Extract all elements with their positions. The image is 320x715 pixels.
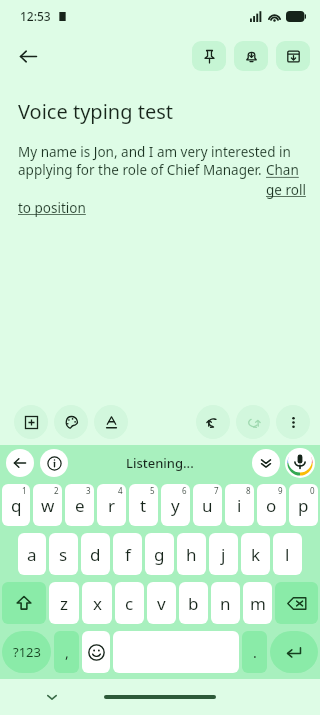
button[interactable]: r xyxy=(97,484,126,526)
staticText: w xyxy=(41,494,55,517)
button[interactable]: w xyxy=(33,484,62,526)
button[interactable]: Backspace xyxy=(275,582,318,624)
button[interactable]: Voice input xyxy=(285,448,315,478)
button[interactable]: Redo xyxy=(236,405,270,439)
staticText: Listening... xyxy=(126,454,194,472)
staticText: m xyxy=(250,592,266,615)
staticText: s xyxy=(59,543,68,566)
button[interactable]: i xyxy=(225,484,254,526)
button[interactable]: Collapse keyboard xyxy=(252,449,280,477)
staticText: , xyxy=(65,643,69,662)
staticText: l xyxy=(285,543,290,566)
staticText: n xyxy=(220,592,231,615)
staticText: o xyxy=(266,494,277,517)
button[interactable]: t xyxy=(129,484,158,526)
staticText: applying for the role of Chief Manager. xyxy=(18,161,266,179)
staticText: q xyxy=(11,494,22,517)
button[interactable]: u xyxy=(193,484,222,526)
button[interactable]: Undo xyxy=(196,405,230,439)
button[interactable]: Back xyxy=(8,36,48,76)
staticText: 5 xyxy=(150,485,155,496)
staticText: x xyxy=(93,592,102,615)
button[interactable]: ?123 xyxy=(2,631,51,673)
button[interactable]: , xyxy=(54,631,79,673)
button[interactable]: c xyxy=(115,582,144,624)
staticText: 8 xyxy=(246,485,251,496)
button[interactable]: Enter xyxy=(270,631,318,673)
button[interactable]: d xyxy=(81,533,110,575)
button[interactable]: h xyxy=(177,533,206,575)
staticText: 0 xyxy=(310,485,315,496)
staticText: d xyxy=(90,543,101,566)
staticText: 12:53 xyxy=(20,8,51,24)
staticText: My name is Jon, and I am very interested… xyxy=(18,143,291,161)
button[interactable]: n xyxy=(211,582,240,624)
staticText: c xyxy=(125,592,134,615)
button[interactable]: f xyxy=(113,533,142,575)
staticText: u xyxy=(202,494,213,517)
staticText: j xyxy=(221,543,226,566)
staticText: Change roll xyxy=(266,161,306,199)
staticText: i xyxy=(237,494,242,517)
staticText: r xyxy=(108,494,116,517)
staticText: y xyxy=(171,494,180,517)
staticText: 7 xyxy=(214,485,219,496)
staticText: f xyxy=(125,543,131,566)
staticText: v xyxy=(157,592,166,615)
button[interactable]: Shift xyxy=(2,582,46,624)
staticText: ?123 xyxy=(13,643,41,661)
staticText: k xyxy=(251,543,261,566)
button[interactable]: s xyxy=(49,533,78,575)
staticText: t xyxy=(140,494,147,517)
button[interactable]: m xyxy=(243,582,272,624)
button[interactable]: o xyxy=(257,484,286,526)
button[interactable]: Background colour xyxy=(54,405,88,439)
button[interactable]: Back xyxy=(6,449,34,477)
button[interactable]: . xyxy=(242,631,267,673)
button[interactable]: k xyxy=(241,533,270,575)
button[interactable]: p xyxy=(289,484,318,526)
staticText: p xyxy=(298,494,309,517)
button[interactable]: Emoji xyxy=(82,631,110,673)
staticText: 2 xyxy=(54,485,59,496)
staticText: a xyxy=(27,543,37,566)
staticText: to position xyxy=(18,199,86,217)
button[interactable]: Text format xyxy=(94,405,128,439)
button[interactable]: Info xyxy=(40,449,68,477)
button[interactable]: q xyxy=(2,484,30,526)
staticText: b xyxy=(188,592,199,615)
button[interactable]: x xyxy=(82,582,112,624)
button[interactable]: y xyxy=(161,484,190,526)
button[interactable]: l xyxy=(273,533,302,575)
staticText: 9 xyxy=(278,485,283,496)
button[interactable]: Reminder xyxy=(234,41,268,71)
staticText: Voice typing test xyxy=(18,98,173,125)
staticText: 6 xyxy=(182,485,187,496)
button[interactable]: g xyxy=(145,533,174,575)
staticText: . xyxy=(253,643,257,662)
button[interactable]: v xyxy=(147,582,176,624)
button[interactable]: Hide keyboard xyxy=(40,685,64,709)
staticText: e xyxy=(75,494,85,517)
staticText: h xyxy=(186,543,197,566)
staticText: 1 xyxy=(22,485,27,496)
staticText: z xyxy=(60,592,68,615)
button[interactable]: z xyxy=(49,582,79,624)
staticText: g xyxy=(154,543,165,566)
button[interactable]: e xyxy=(65,484,94,526)
button[interactable]: Add xyxy=(14,405,48,439)
button[interactable]: More options xyxy=(276,405,310,439)
button[interactable]: b xyxy=(179,582,208,624)
button[interactable]: j xyxy=(209,533,238,575)
button[interactable]: Archive xyxy=(276,41,310,71)
staticText: 4 xyxy=(118,485,123,496)
button[interactable]: Pin xyxy=(192,41,226,71)
button[interactable]: a xyxy=(18,533,46,575)
button[interactable]: Space xyxy=(113,631,239,673)
staticText: 3 xyxy=(86,485,91,496)
